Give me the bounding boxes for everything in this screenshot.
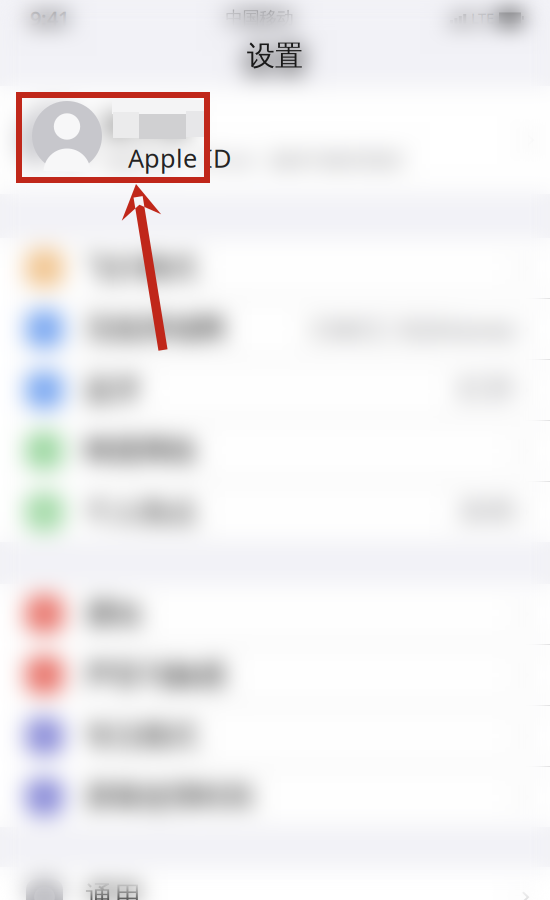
button[interactable]: 通用 — [0, 867, 550, 900]
staticText: 专注模式 — [85, 719, 197, 753]
staticText: 通知 — [85, 597, 141, 631]
staticText: 蜂窝网络 — [85, 434, 197, 468]
button[interactable]: 通知 — [0, 584, 550, 644]
staticText: 蓝牙 — [85, 373, 141, 407]
button[interactable]: 屏幕使用时间 — [0, 767, 550, 827]
button[interactable]: 蓝牙 — [0, 360, 550, 420]
staticText: 张小明 — [102, 108, 189, 144]
staticText: 屏幕使用时间 — [85, 780, 253, 814]
button[interactable]: 专注模式 — [0, 706, 550, 766]
staticText: Apple ID、iCloud、媒体与购买项目 — [102, 147, 404, 172]
staticText: 个人热点 — [85, 495, 197, 529]
staticText: Apple ID — [128, 141, 231, 175]
staticText: 关闭 — [458, 495, 514, 529]
staticText: LTE — [471, 8, 494, 28]
staticText: CMCC-5GHome — [311, 310, 514, 348]
button[interactable]: 无线局域网 — [0, 299, 550, 359]
button[interactable]: 飞行模式 — [0, 238, 550, 298]
staticText: 通用 — [85, 880, 141, 900]
button[interactable]: 声音与触感 — [0, 645, 550, 705]
button[interactable]: 个人热点 — [0, 482, 550, 542]
staticText: 中国移动 — [225, 7, 293, 29]
staticText: 设置 — [247, 39, 303, 73]
staticText: 声音与触感 — [85, 658, 225, 692]
staticText: 打开 — [458, 373, 514, 407]
staticText: 设置 — [242, 40, 308, 81]
button[interactable]: 张小明 — [0, 86, 550, 194]
staticText: 飞行模式 — [85, 251, 197, 285]
staticText: 无线局域网 — [85, 312, 225, 346]
button[interactable]: 蜂窝网络 — [0, 421, 550, 481]
staticText: 9:41 — [30, 5, 69, 31]
